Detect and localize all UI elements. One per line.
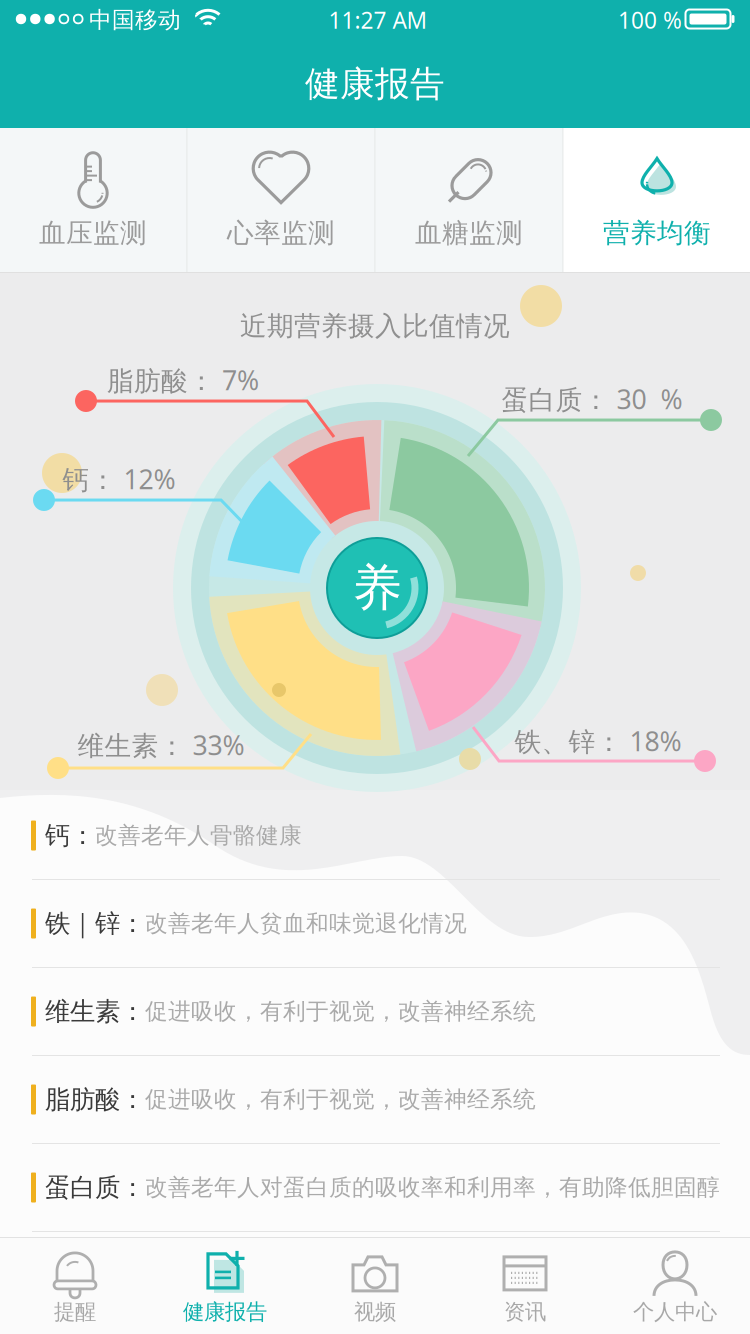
- staticText: 促进吸收，有利于视觉，改善神经系统: [145, 1086, 536, 1113]
- button[interactable]: 资讯: [450, 1238, 600, 1334]
- staticText: 钙： 12%: [62, 461, 175, 497]
- staticText: 血糖监测: [415, 217, 523, 249]
- staticText: 改善老年人对蛋白质的吸收率和利用率，有助降低胆固醇: [145, 1174, 720, 1201]
- staticText: 11:27 AM: [328, 5, 427, 35]
- staticText: 血压监测: [39, 217, 147, 249]
- button[interactable]: 视频: [300, 1238, 450, 1334]
- staticText: 维生素：: [45, 996, 145, 1027]
- staticText: 维生素： 33%: [77, 727, 244, 763]
- button[interactable]: 健康报告: [150, 1238, 300, 1334]
- staticText: 改善老年人贫血和味觉退化情况: [145, 910, 467, 937]
- staticText: 健康报告: [305, 63, 445, 105]
- staticText: 蛋白质： 30 %: [501, 381, 682, 417]
- staticText: 资讯: [504, 1299, 546, 1325]
- button[interactable]: 脂肪酸：: [0, 1056, 750, 1144]
- staticText: 提醒: [54, 1299, 96, 1325]
- button[interactable]: 提醒: [0, 1238, 150, 1334]
- staticText: 钙：: [45, 820, 95, 851]
- staticText: 100 %: [618, 5, 682, 35]
- button[interactable]: 维生素：: [0, 968, 750, 1056]
- staticText: 改善老年人骨骼健康: [95, 822, 302, 849]
- button[interactable]: 血压监测: [0, 128, 186, 272]
- staticText: 脂肪酸： 7%: [107, 362, 259, 398]
- staticText: 个人中心: [633, 1299, 717, 1325]
- staticText: 中国移动: [89, 6, 181, 34]
- button[interactable]: 营养均衡: [563, 128, 750, 272]
- staticText: 脂肪酸：: [45, 1084, 145, 1115]
- button[interactable]: 钙：: [0, 792, 750, 880]
- staticText: 养: [352, 558, 401, 618]
- button[interactable]: 铁｜锌：: [0, 880, 750, 968]
- button[interactable]: 个人中心: [600, 1238, 750, 1334]
- staticText: 健康报告: [183, 1299, 267, 1325]
- button[interactable]: 心率监测: [187, 128, 374, 272]
- staticText: 营养均衡: [603, 217, 711, 249]
- staticText: 近期营养摄入比值情况: [240, 310, 510, 342]
- staticText: 铁｜锌：: [45, 908, 145, 939]
- staticText: 心率监测: [227, 217, 335, 249]
- staticText: 视频: [354, 1299, 396, 1325]
- button[interactable]: 血糖监测: [375, 128, 562, 272]
- staticText: 蛋白质：: [45, 1172, 145, 1203]
- button[interactable]: 蛋白质：: [0, 1144, 750, 1232]
- staticText: 促进吸收，有利于视觉，改善神经系统: [145, 998, 536, 1025]
- staticText: 铁、锌： 18%: [514, 723, 681, 759]
